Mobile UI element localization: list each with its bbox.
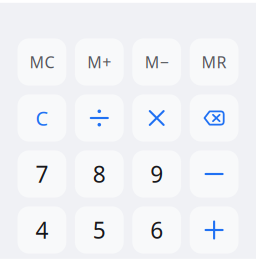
button[interactable]: Subtract [190, 150, 238, 198]
staticText: 8 [93, 159, 106, 189]
button[interactable]: 9 [132, 150, 181, 198]
button[interactable]: 6 [132, 206, 181, 254]
button[interactable]: Memory add [75, 38, 124, 86]
staticText: C [35, 105, 48, 131]
button[interactable]: Clear [17, 94, 66, 142]
button[interactable]: Memory clear [17, 38, 66, 86]
button[interactable]: Memory subtract [132, 38, 181, 86]
staticText: 4 [35, 215, 48, 245]
staticText: 6 [150, 215, 163, 245]
button[interactable]: Memory recall [190, 38, 238, 86]
staticText: MC [29, 51, 54, 73]
staticText: M− [145, 51, 169, 73]
button[interactable]: Divide [75, 94, 124, 142]
staticText: MR [202, 51, 227, 73]
staticText: 9 [150, 159, 163, 189]
button[interactable]: Multiply [132, 94, 181, 142]
staticText: 5 [93, 215, 106, 245]
staticText: M+ [87, 51, 111, 73]
button[interactable]: Delete [190, 94, 238, 142]
button[interactable]: 5 [75, 206, 124, 254]
button[interactable]: 4 [17, 206, 66, 254]
button[interactable]: 7 [17, 150, 66, 198]
staticText: 7 [35, 159, 48, 189]
button[interactable]: 8 [75, 150, 124, 198]
button[interactable]: Add [190, 206, 238, 254]
